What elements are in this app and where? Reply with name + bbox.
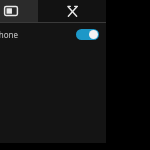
button[interactable]: Tools — [38, 0, 106, 22]
button[interactable]: Phone — [0, 23, 106, 45]
staticText: Phone — [0, 29, 19, 40]
button[interactable]: Phone toggle, on — [76, 29, 99, 40]
button[interactable]: Device tab — [0, 0, 38, 22]
